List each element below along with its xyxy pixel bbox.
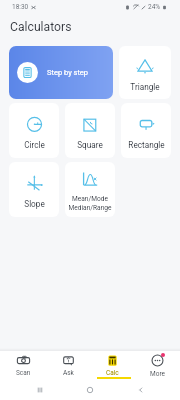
button[interactable]: Step by step (9, 46, 113, 99)
staticText: Step by step (47, 68, 89, 77)
button[interactable]: Back (130, 379, 152, 400)
button[interactable]: Ask (46, 351, 90, 379)
button[interactable]: Calc (90, 351, 134, 379)
staticText: 24% (148, 3, 161, 11)
button[interactable]: Home (79, 379, 101, 400)
staticText: Calc (106, 369, 119, 377)
button[interactable]: Circle (9, 103, 59, 158)
button[interactable]: More (135, 351, 179, 379)
staticText: Circle (24, 140, 45, 150)
staticText: 18:30 (12, 3, 29, 11)
button[interactable]: Recents (29, 379, 51, 400)
staticText: Scan (16, 369, 31, 377)
staticText: Square (77, 140, 103, 150)
button[interactable]: Scan (1, 351, 45, 379)
staticText: Ask (63, 369, 74, 377)
button[interactable]: Mean/Mode Median/Range (65, 162, 115, 217)
button[interactable]: Slope (9, 162, 59, 217)
staticText: Rectangle (128, 140, 165, 150)
button[interactable]: Rectangle (121, 103, 171, 158)
staticText: Mean/Mode Median/Range (68, 195, 112, 212)
staticText: Calculators (10, 20, 72, 34)
button[interactable]: Square (65, 103, 115, 158)
button[interactable]: Triangle (119, 46, 171, 99)
staticText: More (150, 370, 165, 378)
staticText: Triangle (130, 82, 160, 92)
staticText: Slope (24, 199, 45, 209)
